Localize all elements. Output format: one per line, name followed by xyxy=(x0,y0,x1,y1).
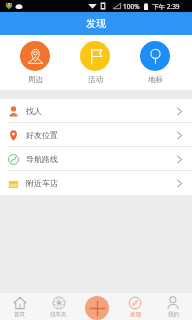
staticText: 下午 2:39 xyxy=(152,2,180,11)
button[interactable]: 好友位置 xyxy=(0,123,192,147)
staticText: 发现 xyxy=(86,17,106,30)
staticText: 找人 xyxy=(26,106,42,116)
staticText: 附近车店 xyxy=(26,178,58,188)
staticText: 地标 xyxy=(148,75,163,84)
button[interactable]: 发现 xyxy=(116,293,154,320)
button[interactable]: 活动 xyxy=(65,35,125,84)
staticText: 100% xyxy=(123,2,140,11)
staticText: 找车友 xyxy=(50,311,67,318)
button[interactable]: 发布 xyxy=(85,296,109,320)
button[interactable]: 首页 xyxy=(0,293,39,320)
button[interactable]: 附近车店 xyxy=(0,171,192,195)
button[interactable]: 导航路线 xyxy=(0,147,192,171)
button[interactable]: 我的 xyxy=(154,293,192,320)
button[interactable]: 找车友 xyxy=(39,293,78,320)
staticText: 好友位置 xyxy=(26,130,58,140)
button[interactable]: 找人 xyxy=(0,99,192,123)
staticText: 周边 xyxy=(28,75,43,84)
staticText: 首页 xyxy=(14,311,25,318)
staticText: 我的 xyxy=(168,311,179,318)
button[interactable]: 地标 xyxy=(125,35,185,84)
staticText: 活动 xyxy=(88,75,103,84)
staticText: 发现 xyxy=(130,311,141,318)
staticText: 导航路线 xyxy=(26,154,58,164)
button[interactable]: 周边 xyxy=(5,35,65,84)
